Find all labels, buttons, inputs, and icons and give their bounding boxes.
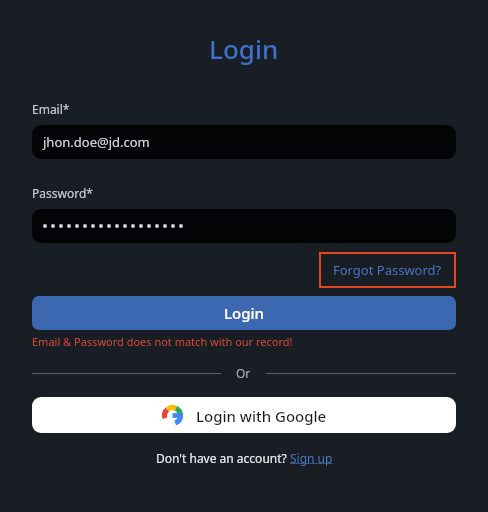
- button[interactable]: Sign up: [290, 450, 333, 466]
- button[interactable]: jhon.doe@jd.com: [32, 125, 456, 159]
- staticText: Password*: [32, 185, 93, 201]
- staticText: Email*: [32, 101, 70, 117]
- staticText: Forgot Password?: [333, 261, 442, 279]
- button[interactable]: Login with Google: [32, 397, 456, 433]
- staticText: Login with Google: [196, 406, 327, 426]
- staticText: jhon.doe@jd.com: [43, 133, 150, 151]
- staticText: Or: [236, 365, 251, 381]
- staticText: Sign up: [290, 450, 333, 466]
- staticText: Login: [224, 303, 264, 323]
- button[interactable]: [32, 209, 456, 243]
- staticText: Login: [209, 31, 279, 66]
- staticText: Don't have an account?: [156, 450, 290, 466]
- button[interactable]: Login: [32, 296, 456, 330]
- button[interactable]: Forgot Password?: [319, 252, 456, 288]
- staticText: Email & Password does not match with our…: [32, 334, 293, 349]
